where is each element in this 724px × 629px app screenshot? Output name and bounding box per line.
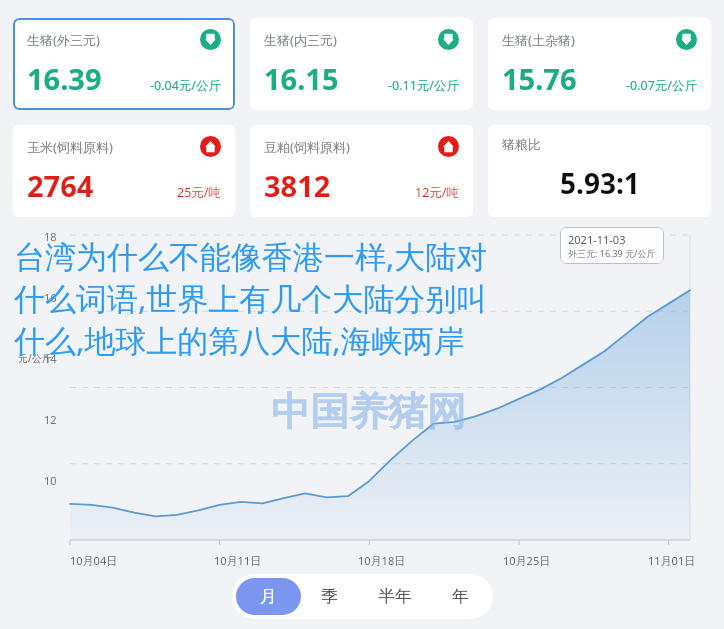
staticText: 10月25日 [503,553,551,568]
button[interactable]: 季 [301,578,358,615]
button[interactable]: 生猪(外三元) [13,18,235,110]
staticText: 16 [44,290,57,305]
button[interactable]: 年 [432,578,489,615]
staticText: -0.11元/公斤 [388,77,459,94]
staticText: 2764 [27,166,94,205]
staticText: 5.93:1 [560,164,640,202]
staticText: 台湾为什么不能像香港一样,大陆对 [14,235,488,277]
staticText: 10 [44,473,57,488]
button[interactable]: 生猪(土杂猪) [488,18,711,110]
staticText: 生猪(土杂猪) [502,31,575,49]
staticText: 11月01日 [648,553,696,568]
staticText: 12 [44,412,57,427]
button[interactable]: 生猪(内三元) [250,18,473,110]
staticText: 年 [452,586,469,607]
staticText: 15.76 [502,59,577,98]
staticText: 元/公斤 [18,351,52,365]
staticText: 2021-11-03 [568,232,626,247]
staticText: 月 [260,586,277,607]
button[interactable]: 半年 [358,578,432,615]
button[interactable]: 玉米(饲料原料) [13,125,235,217]
other: Price down [676,29,697,50]
staticText: 什么词语,世界上有几个大陆分别叫 [14,277,488,319]
staticText: 12元/吨 [415,184,459,201]
staticText: 生猪(外三元) [27,31,100,49]
button[interactable]: 猪粮比 [488,125,711,217]
button[interactable]: 豆粕(饲料原料) [250,125,473,217]
staticText: 豆粕(饲料原料) [264,138,350,156]
staticText: 25元/吨 [177,184,221,201]
staticText: 16.39 [27,59,102,98]
staticText: 14 [44,351,57,366]
other: Price up [200,136,221,157]
other: Price up [438,136,459,157]
staticText: 18 [44,229,57,244]
staticText: 中国养猪网 [271,387,466,436]
staticText: 10月18日 [358,553,406,568]
staticText: 10月11日 [214,553,262,568]
staticText: 外三元: 16.39 元/公斤 [568,247,656,259]
staticText: 猪粮比 [502,136,541,152]
staticText: 16.15 [264,59,339,98]
staticText: 生猪(内三元) [264,31,337,49]
other: Price down [438,29,459,50]
other: Price down [200,29,221,50]
staticText: -0.04元/公斤 [150,77,221,94]
staticText: 3812 [264,166,331,205]
staticText: 玉米(饲料原料) [27,138,113,156]
staticText: 什么,地球上的第八大陆,海峡两岸 [14,319,465,361]
staticText: 10月04日 [70,553,118,568]
staticText: 半年 [378,586,412,607]
staticText: 季 [321,586,338,607]
staticText: -0.07元/公斤 [626,77,697,94]
button[interactable]: 月 [236,578,301,615]
